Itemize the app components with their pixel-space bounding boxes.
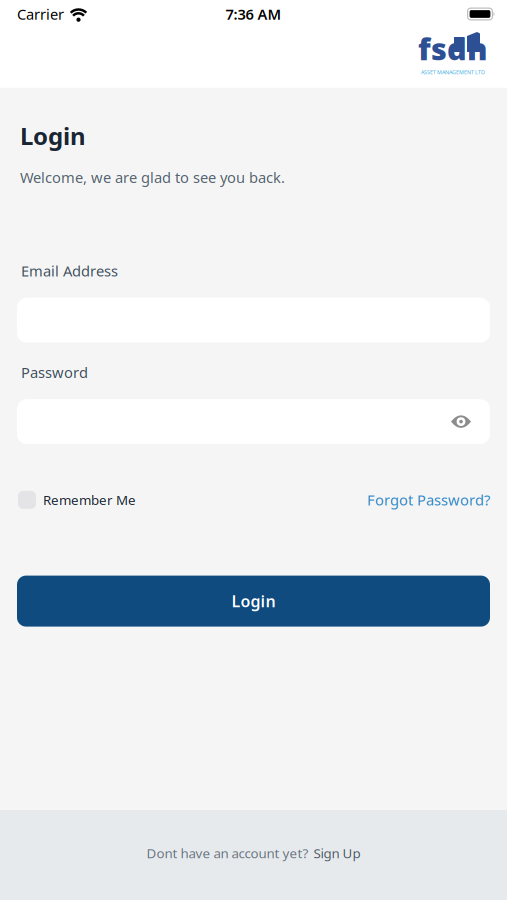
staticText: Sign Up: [313, 844, 360, 862]
staticText: Email Address: [21, 261, 118, 281]
staticText: Welcome, we are glad to see you back.: [20, 168, 285, 187]
staticText: Password: [21, 363, 88, 382]
staticText: ASSET MANAGEMENT LTD: [421, 69, 485, 76]
staticText: Remember Me: [43, 491, 136, 509]
staticText: fsdh: [418, 28, 488, 69]
staticText: Login: [20, 120, 86, 152]
staticText: 7:36 AM: [225, 4, 281, 24]
staticText: Carrier: [17, 4, 64, 24]
staticText: Forgot Password?: [367, 490, 490, 510]
staticText: Login: [231, 590, 275, 612]
button[interactable]: Login: [17, 576, 490, 627]
staticText: Dont have an account yet?: [146, 844, 308, 862]
button[interactable]: Dont have an account yet?: [146, 844, 360, 862]
button[interactable]: Remember Me: [18, 491, 136, 509]
button[interactable]: [17, 399, 490, 444]
button[interactable]: Forgot Password?: [367, 490, 490, 510]
